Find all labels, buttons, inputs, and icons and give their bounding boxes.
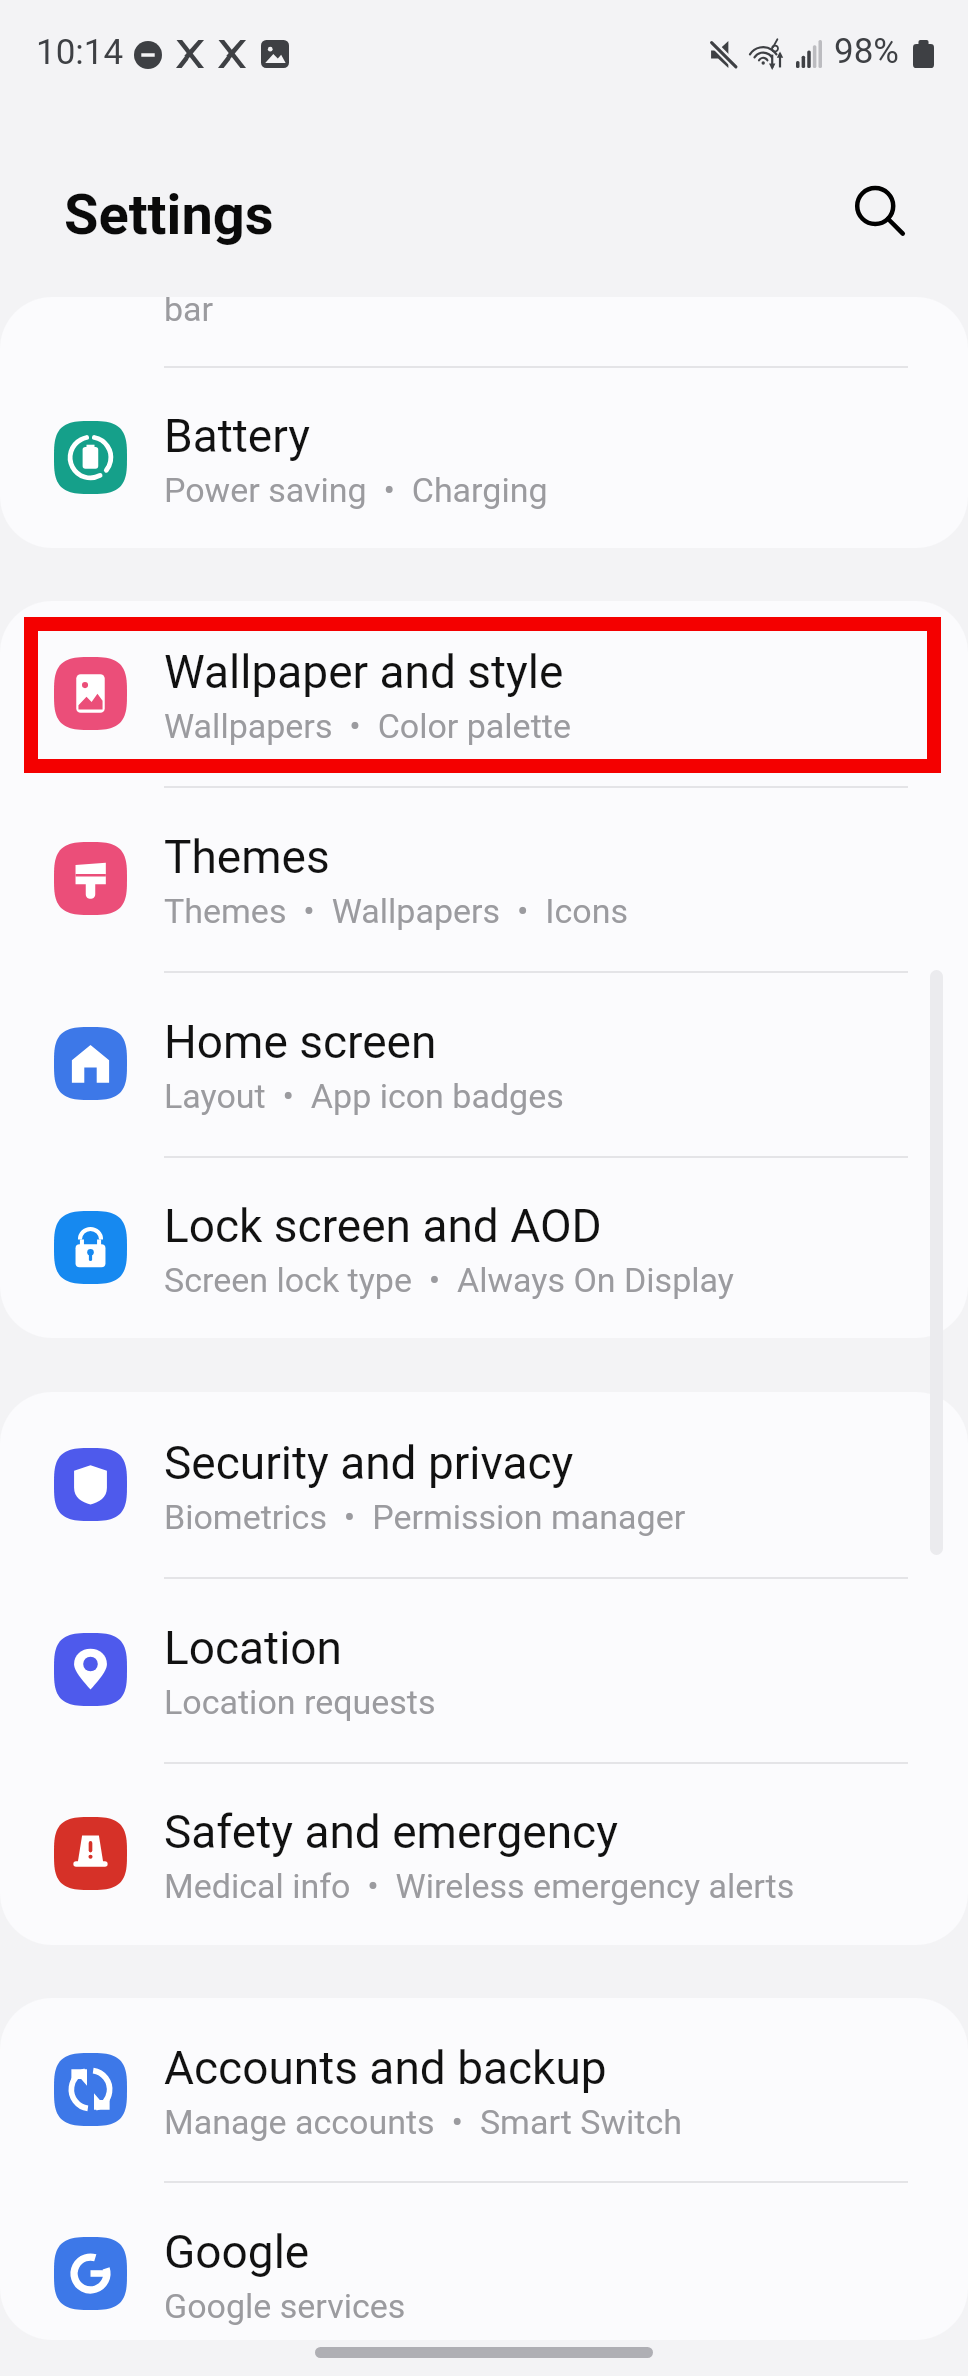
staticText: Lock screen and AOD: [164, 1199, 602, 1253]
staticText: Battery: [164, 409, 310, 463]
staticText: Layout • App icon badges: [164, 1076, 564, 1116]
button[interactable]: Security and privacy: [0, 1392, 960, 1577]
staticText: 98%: [834, 31, 899, 72]
staticText: bar: [164, 297, 214, 329]
staticText: 10:14: [36, 32, 124, 73]
staticText: Google: [164, 2225, 310, 2279]
button[interactable]: Home screen: [0, 971, 960, 1156]
staticText: Security and privacy: [164, 1436, 574, 1490]
staticText: Accounts and backup: [164, 2041, 607, 2095]
button[interactable]: Safety and emergency: [0, 1762, 960, 1945]
button[interactable]: Wallpaper and style: [0, 601, 960, 786]
button[interactable]: Lock screen and AOD: [0, 1156, 960, 1338]
staticText: Screen lock type • Always On Display: [164, 1260, 734, 1300]
button[interactable]: Location: [0, 1577, 960, 1762]
staticText: Medical info • Wireless emergency alerts: [164, 1866, 795, 1906]
button[interactable]: Accounts and backup: [0, 1998, 960, 2181]
button[interactable]: Google: [0, 2181, 960, 2340]
staticText: Google services: [164, 2286, 406, 2326]
staticText: Wallpaper and style: [164, 645, 564, 699]
button[interactable]: Search: [828, 160, 932, 264]
staticText: Power saving • Charging: [164, 470, 548, 510]
staticText: Home screen: [164, 1015, 437, 1069]
staticText: Themes • Wallpapers • Icons: [164, 891, 629, 931]
staticText: Wallpapers • Color palette: [164, 706, 571, 746]
staticText: Safety and emergency: [164, 1805, 618, 1859]
staticText: Location requests: [164, 1682, 436, 1722]
button[interactable]: Battery: [0, 366, 960, 548]
staticText: Settings: [64, 182, 274, 248]
staticText: Themes: [164, 830, 330, 884]
button[interactable]: Themes: [0, 786, 960, 971]
staticText: Biometrics • Permission manager: [164, 1497, 686, 1537]
staticText: Manage accounts • Smart Switch: [164, 2102, 682, 2142]
staticText: Location: [164, 1621, 342, 1675]
